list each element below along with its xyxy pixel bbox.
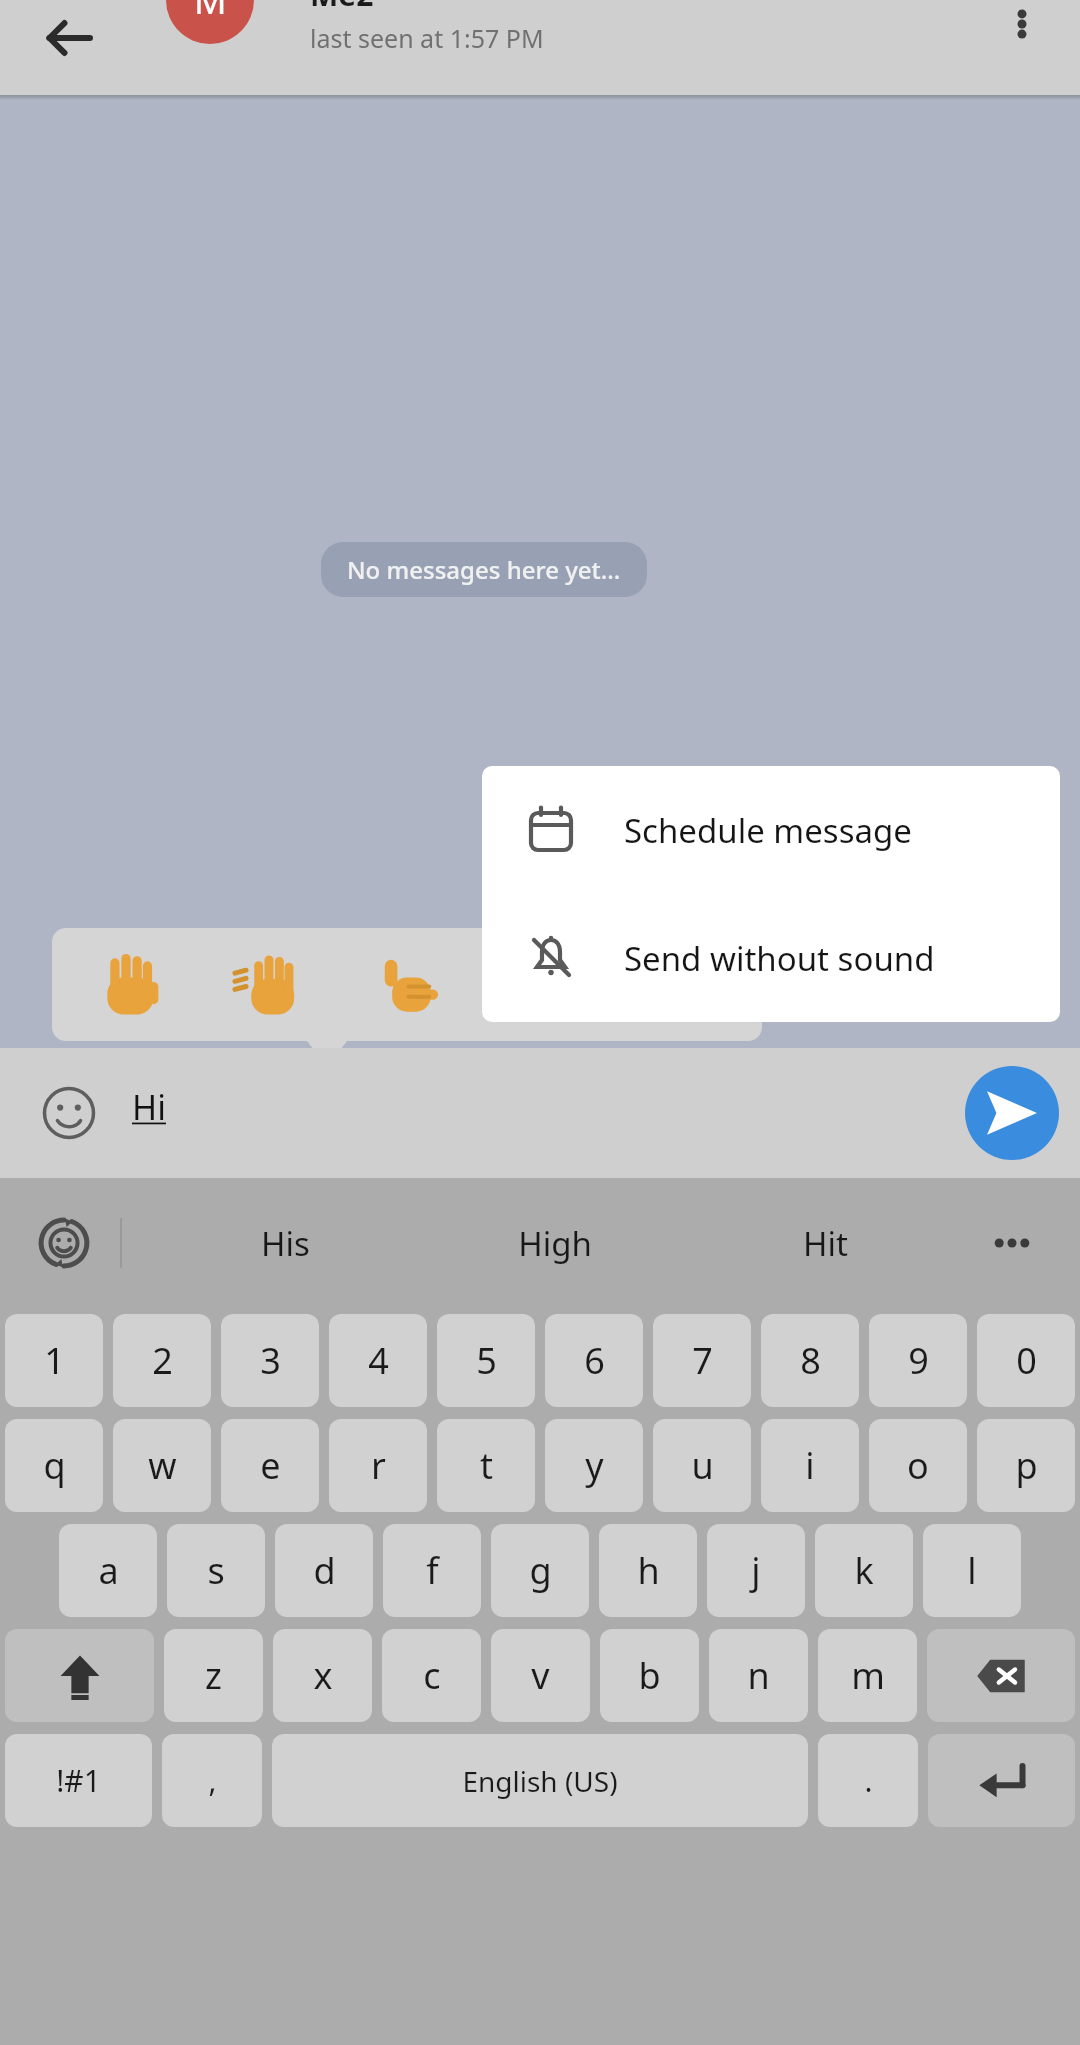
staticText: e: [260, 1441, 281, 1490]
staticText: Hit: [803, 1221, 848, 1266]
staticText: High: [518, 1221, 592, 1266]
button[interactable]: Hit: [690, 1178, 960, 1308]
button[interactable]: 7: [653, 1314, 751, 1407]
staticText: 7: [692, 1336, 713, 1385]
staticText: m: [851, 1651, 885, 1700]
button[interactable]: M: [166, 0, 254, 44]
staticText: 5: [476, 1336, 497, 1385]
button[interactable]: Schedule message: [482, 766, 1060, 894]
button[interactable]: Send without sound: [482, 894, 1060, 1022]
staticText: ,: [208, 1760, 217, 1801]
staticText: n: [747, 1651, 770, 1700]
staticText: 0: [1016, 1336, 1037, 1385]
button[interactable]: b: [600, 1629, 699, 1722]
staticText: 2: [152, 1336, 173, 1385]
staticText: g: [529, 1546, 552, 1595]
staticText: s: [207, 1546, 225, 1595]
staticText: y: [585, 1441, 604, 1490]
staticText: His: [261, 1221, 310, 1266]
staticText: c: [423, 1651, 441, 1700]
button[interactable]: t: [437, 1419, 535, 1512]
staticText: v: [531, 1651, 550, 1700]
button[interactable]: x: [273, 1629, 372, 1722]
button[interactable]: 3: [221, 1314, 319, 1407]
button[interactable]: [338, 928, 476, 1041]
button[interactable]: z: [164, 1629, 263, 1722]
staticText: h: [637, 1546, 660, 1595]
button[interactable]: a: [59, 1524, 157, 1617]
button[interactable]: [614, 928, 752, 1041]
staticText: u: [691, 1441, 714, 1490]
button[interactable]: p: [977, 1419, 1075, 1512]
staticText: p: [1015, 1441, 1038, 1490]
button[interactable]: g: [491, 1524, 589, 1617]
button[interactable]: 4: [329, 1314, 427, 1407]
button[interactable]: m: [818, 1629, 917, 1722]
staticText: .: [864, 1760, 873, 1801]
button[interactable]: 1: [5, 1314, 103, 1407]
button[interactable]: j: [707, 1524, 805, 1617]
button[interactable]: More options: [974, 0, 1070, 71]
button[interactable]: .: [818, 1734, 918, 1827]
staticText: w: [148, 1441, 177, 1490]
button[interactable]: More suggestions: [972, 1203, 1052, 1283]
button[interactable]: 0: [977, 1314, 1075, 1407]
button[interactable]: e: [221, 1419, 319, 1512]
button[interactable]: v: [491, 1629, 590, 1722]
button[interactable]: n: [709, 1629, 808, 1722]
button[interactable]: [62, 928, 200, 1041]
button[interactable]: Send: [965, 1066, 1059, 1160]
button[interactable]: Switch to emoji: [22, 1201, 106, 1285]
staticText: Send without sound: [624, 936, 935, 981]
staticText: z: [205, 1651, 222, 1700]
staticText: 6: [584, 1336, 605, 1385]
button[interactable]: Back: [20, 0, 116, 85]
staticText: 1: [44, 1336, 65, 1385]
button[interactable]: Enter: [928, 1734, 1075, 1827]
button[interactable]: High: [420, 1178, 690, 1308]
button[interactable]: His: [150, 1178, 420, 1308]
button[interactable]: q: [5, 1419, 103, 1512]
button[interactable]: d: [275, 1524, 373, 1617]
button[interactable]: 5: [437, 1314, 535, 1407]
button[interactable]: c: [382, 1629, 481, 1722]
staticText: i: [805, 1441, 815, 1490]
button[interactable]: k: [815, 1524, 913, 1617]
button[interactable]: Emoji: [24, 1068, 114, 1158]
staticText: k: [854, 1546, 874, 1595]
button[interactable]: w: [113, 1419, 211, 1512]
button[interactable]: !#1: [5, 1734, 152, 1827]
button[interactable]: [476, 928, 614, 1041]
button[interactable]: u: [653, 1419, 751, 1512]
button[interactable]: 2: [113, 1314, 211, 1407]
staticText: Me2: [310, 0, 374, 15]
staticText: f: [426, 1546, 439, 1595]
button[interactable]: r: [329, 1419, 427, 1512]
button[interactable]: Backspace: [927, 1629, 1075, 1722]
button[interactable]: y: [545, 1419, 643, 1512]
button[interactable]: [200, 928, 338, 1041]
button[interactable]: 6: [545, 1314, 643, 1407]
button[interactable]: Shift: [5, 1629, 154, 1722]
staticText: Schedule message: [624, 808, 912, 853]
button[interactable]: 9: [869, 1314, 967, 1407]
staticText: !#1: [56, 1760, 101, 1801]
button[interactable]: English (US): [272, 1734, 808, 1827]
button[interactable]: i: [761, 1419, 859, 1512]
staticText: r: [371, 1441, 386, 1490]
staticText: M: [194, 0, 227, 25]
staticText: 3: [260, 1336, 281, 1385]
button[interactable]: h: [599, 1524, 697, 1617]
staticText: t: [480, 1441, 493, 1490]
button[interactable]: 8: [761, 1314, 859, 1407]
staticText: 4: [368, 1336, 389, 1385]
button[interactable]: o: [869, 1419, 967, 1512]
staticText: English (US): [462, 1762, 618, 1800]
button[interactable]: ,: [162, 1734, 262, 1827]
staticText: o: [907, 1441, 929, 1490]
button[interactable]: f: [383, 1524, 481, 1617]
button[interactable]: l: [923, 1524, 1021, 1617]
staticText: d: [313, 1546, 336, 1595]
staticText: last seen at 1:57 PM: [310, 21, 544, 55]
button[interactable]: s: [167, 1524, 265, 1617]
